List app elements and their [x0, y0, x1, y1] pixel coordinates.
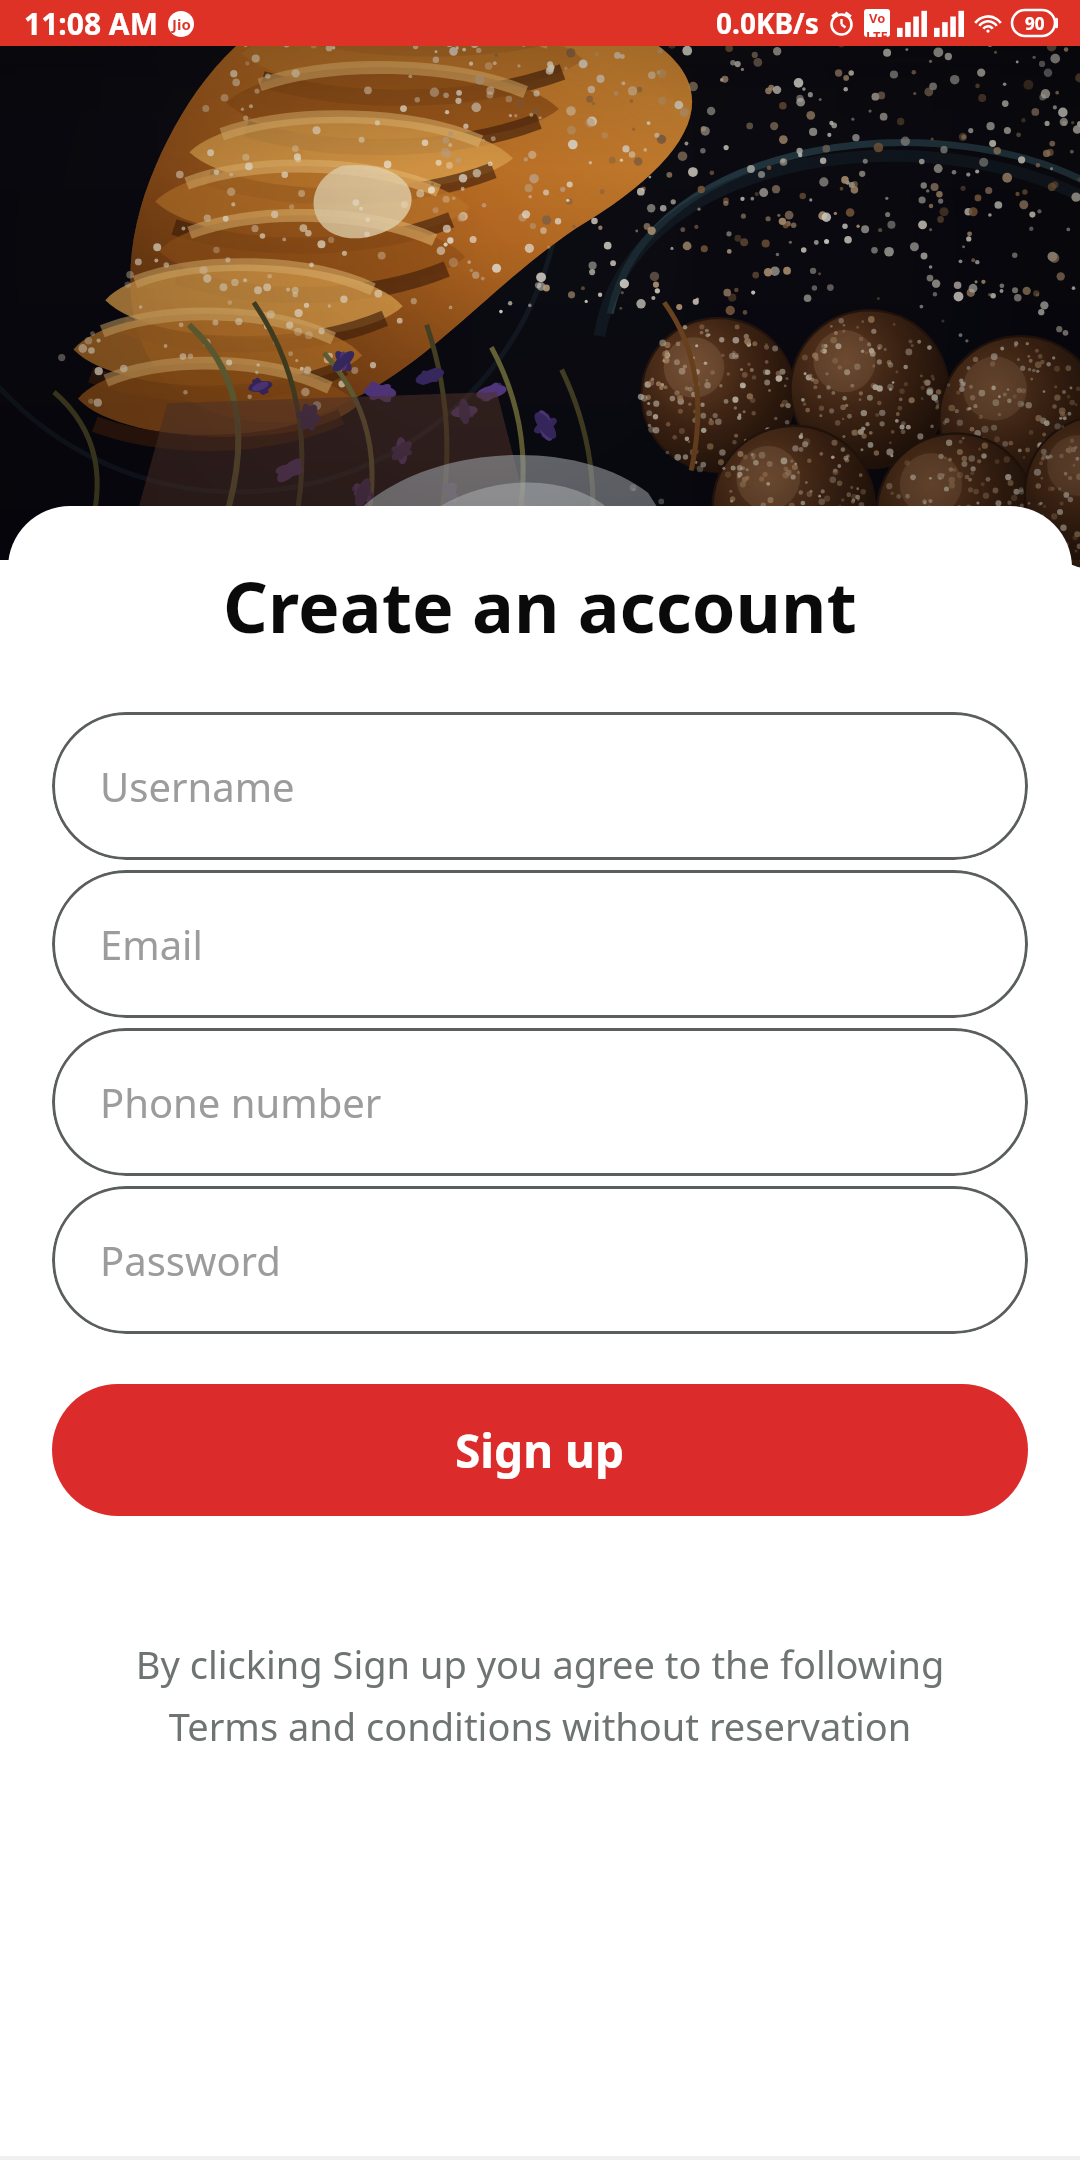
- button[interactable]: Sign up: [52, 1384, 1028, 1516]
- staticText: Password: [100, 1233, 281, 1287]
- staticText: 90: [1025, 12, 1045, 35]
- button[interactable]: Phone number: [52, 1028, 1028, 1176]
- staticText: Vo: [869, 9, 886, 27]
- button[interactable]: Password: [52, 1186, 1028, 1334]
- button[interactable]: Username: [52, 712, 1028, 860]
- staticText: 11:08 AM: [24, 3, 158, 44]
- staticText: Jio: [172, 14, 191, 34]
- staticText: Sign up: [455, 1419, 625, 1482]
- staticText: 0.0KB/s: [716, 4, 819, 42]
- staticText: LTE: [866, 27, 888, 37]
- staticText: Username: [100, 759, 295, 813]
- staticText: Phone number: [100, 1075, 382, 1129]
- staticText: By clicking Sign up you agree to the fol…: [68, 1638, 1012, 1690]
- staticText: Email: [100, 917, 203, 971]
- staticText: Create an account: [8, 558, 1072, 653]
- staticText: Terms and conditions without reservation: [68, 1700, 1012, 1752]
- button[interactable]: Email: [52, 870, 1028, 1018]
